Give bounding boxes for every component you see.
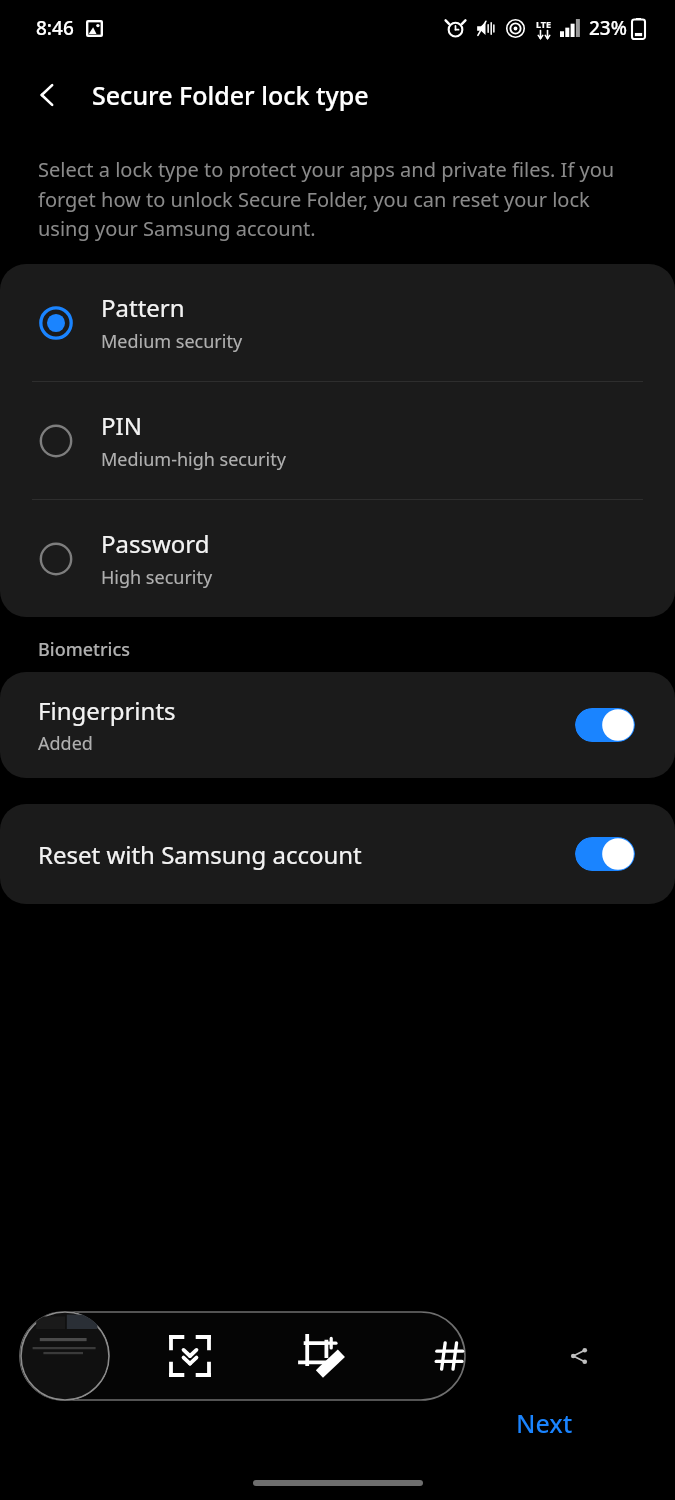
button[interactable]: Next [508,1402,581,1444]
staticText: PIN [101,409,142,442]
button[interactable]: Scroll capture [158,1324,222,1388]
staticText: 8:46 [36,15,74,41]
button[interactable]: Crop and draw [288,1324,352,1388]
staticText: Medium-high security [101,447,286,472]
staticText: Secure Folder lock type [92,78,369,112]
staticText: Added [38,731,93,756]
staticText: Next [516,1406,573,1440]
button[interactable]: Add tags [418,1324,482,1388]
staticText: Biometrics [38,637,130,662]
button[interactable]: Toggle [575,708,635,742]
staticText: Select a lock type to protect your apps … [38,156,637,242]
staticText: Pattern [101,291,185,324]
staticText: Medium security [101,329,243,354]
button[interactable]: Fingerprints [0,672,675,778]
button[interactable]: Toggle [575,837,635,871]
staticText: Reset with Samsung account [38,838,575,871]
button[interactable]: Screenshot preview [20,1311,110,1401]
staticText: High security [101,565,213,590]
button[interactable]: Pattern [0,264,675,381]
staticText: Password [101,527,210,560]
button[interactable]: Share [552,1329,606,1383]
staticText: Fingerprints [38,694,176,727]
button[interactable]: PIN [0,382,675,499]
staticText: 23% [589,15,627,41]
staticText: LTE [536,18,552,30]
button[interactable]: Password [0,500,675,617]
button[interactable]: Reset with Samsung account [0,804,675,904]
button[interactable]: Back [20,67,76,123]
